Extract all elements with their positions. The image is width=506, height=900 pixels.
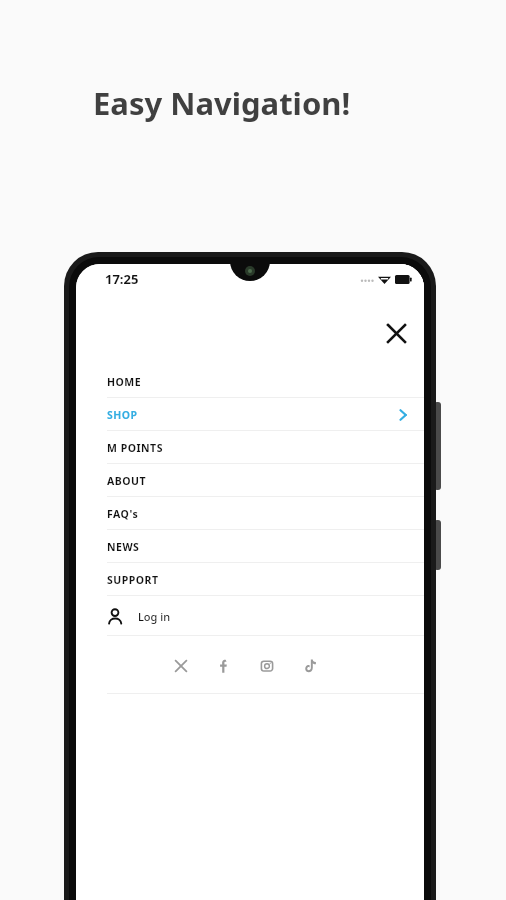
staticText: M POINTS: [107, 441, 163, 455]
button[interactable]: Log in: [76, 596, 424, 636]
button[interactable]: M POINTS: [76, 431, 424, 464]
staticText: SHOP: [107, 408, 138, 422]
button[interactable]: FAQ's: [76, 497, 424, 530]
button[interactable]: NEWS: [76, 530, 424, 563]
button[interactable]: tt: [299, 655, 321, 677]
staticText: Easy Navigation!: [93, 82, 351, 124]
button[interactable]: ig: [256, 655, 278, 677]
button[interactable]: f: [213, 655, 235, 677]
staticText: Log in: [138, 609, 171, 624]
staticText: SUPPORT: [107, 573, 159, 587]
button[interactable]: x: [170, 655, 192, 677]
button[interactable]: Close menu: [380, 317, 412, 349]
staticText: d: [342, 524, 349, 539]
staticText: 17:25: [105, 270, 139, 288]
button[interactable]: SUPPORT: [76, 563, 424, 596]
staticText: NEWS: [107, 540, 140, 554]
button[interactable]: ABOUT: [76, 464, 424, 497]
staticText: HOME: [107, 375, 142, 389]
staticText: ABOUT: [107, 474, 147, 488]
button[interactable]: HOME: [76, 365, 424, 398]
staticText: FAQ's: [107, 507, 139, 521]
button[interactable]: SHOP: [76, 398, 424, 431]
